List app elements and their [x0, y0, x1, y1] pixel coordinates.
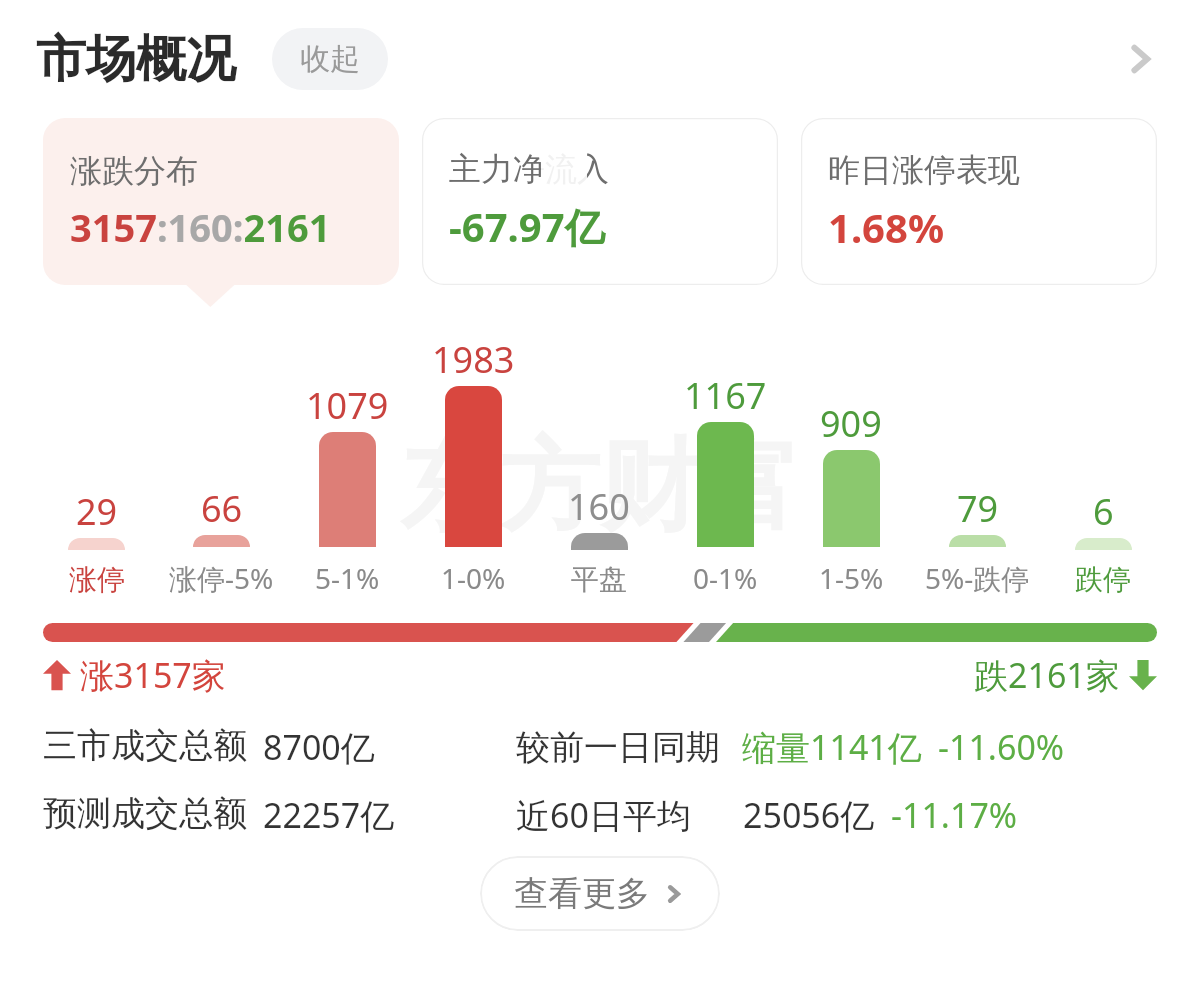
staticText: 5-1% [315, 559, 380, 597]
staticText: 1-0% [441, 559, 506, 597]
staticText: 涨停-5% [169, 559, 274, 597]
staticText: 1983 [432, 335, 515, 384]
button[interactable]: 查看更多 [480, 856, 720, 931]
button[interactable]: 收起 [272, 28, 388, 90]
staticText: 涨停 [69, 562, 125, 597]
staticText: 涨3157家 [80, 652, 226, 698]
staticText: 平盘 [571, 562, 627, 597]
staticText: 1.68% [828, 200, 944, 254]
staticText: 25056亿 [743, 792, 875, 838]
staticText: 1167 [684, 371, 767, 420]
button[interactable]: 涨跌分布 [43, 118, 399, 285]
staticText: 收起 [300, 40, 360, 78]
staticText: 昨日涨停表现 [828, 150, 1020, 190]
staticText: -11.60% [938, 724, 1065, 770]
staticText: 较前一日同期 [516, 726, 720, 769]
staticText: 29 [76, 487, 118, 536]
staticText: 1079 [306, 381, 389, 430]
staticText: 5%-跌停 [925, 559, 1030, 597]
staticText: 近60日平均 [516, 792, 691, 838]
staticText: 8700亿 [263, 724, 375, 770]
staticText: 6 [1093, 487, 1114, 536]
staticText: 160 [568, 482, 630, 531]
staticText: 0-1% [693, 559, 758, 597]
staticText: 22257亿 [263, 792, 395, 838]
staticText: 909 [820, 399, 882, 448]
staticText: 三市成交总额 [43, 724, 247, 767]
staticText: 跌停 [1075, 562, 1131, 597]
staticText: 预测成交总额 [43, 792, 247, 835]
staticText: 东方财富 [400, 424, 800, 550]
staticText: 跌2161家 [974, 652, 1120, 698]
staticText: 3157:160:2161 [70, 201, 331, 253]
staticText: -11.17% [891, 792, 1018, 838]
staticText: 79 [957, 484, 999, 533]
button[interactable]: 昨日涨停表现 [801, 118, 1157, 285]
staticText: 1-5% [819, 559, 884, 597]
staticText: 缩量1141亿 [742, 724, 922, 770]
staticText: 涨跌分布 [70, 151, 198, 191]
button[interactable]: 展开市场概况 [1110, 29, 1170, 89]
staticText: 66 [201, 484, 243, 533]
button[interactable]: 主力净流入 [422, 118, 778, 285]
staticText: 市场概况 [36, 28, 236, 91]
staticText: -67.97亿 [449, 199, 605, 254]
staticText: 主力净流入 [449, 149, 609, 189]
staticText: 查看更多 [514, 872, 650, 915]
